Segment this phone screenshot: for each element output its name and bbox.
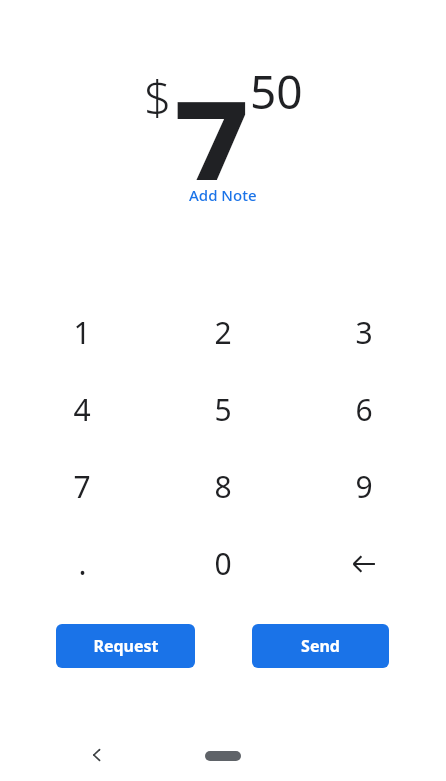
staticText: 50 [250, 60, 303, 123]
staticText: 3 [355, 312, 373, 353]
staticText: 2 [214, 312, 232, 353]
staticText: . [78, 543, 87, 584]
button[interactable]: . [12, 525, 152, 602]
button[interactable]: 8 [152, 448, 293, 525]
staticText: 4 [73, 389, 91, 430]
button[interactable]: Request [56, 624, 195, 668]
staticText: 1 [73, 312, 91, 353]
staticText: 7 [174, 56, 250, 180]
button[interactable]: 2 [152, 294, 293, 371]
button[interactable]: Back [76, 734, 118, 776]
button[interactable]: 6 [293, 371, 434, 448]
staticText: 9 [355, 466, 373, 507]
staticText: Add Note [189, 185, 257, 205]
button[interactable]: Send [252, 624, 389, 668]
button[interactable]: 5 [152, 371, 293, 448]
button[interactable]: Add Note [179, 180, 267, 210]
button[interactable]: 4 [12, 371, 152, 448]
button[interactable]: Home [205, 751, 241, 761]
staticText: 7 [73, 466, 91, 507]
button[interactable]: 7 [12, 448, 152, 525]
staticText: 0 [214, 543, 232, 584]
button[interactable]: 1 [12, 294, 152, 371]
staticText: Request [93, 635, 159, 657]
button[interactable]: 9 [293, 448, 434, 525]
staticText: 6 [355, 389, 373, 430]
staticText: $ [144, 64, 172, 129]
button[interactable]: 0 [152, 525, 293, 602]
button[interactable]: 3 [293, 294, 434, 371]
button[interactable]: Backspace [293, 525, 434, 602]
staticText: Send [301, 635, 340, 657]
staticText: 5 [214, 389, 232, 430]
staticText: 8 [214, 466, 232, 507]
